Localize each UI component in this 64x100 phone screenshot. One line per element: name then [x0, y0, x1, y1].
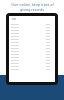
staticText: giving records: [20, 7, 44, 12]
staticText: Give online, keep track of: [11, 2, 54, 7]
